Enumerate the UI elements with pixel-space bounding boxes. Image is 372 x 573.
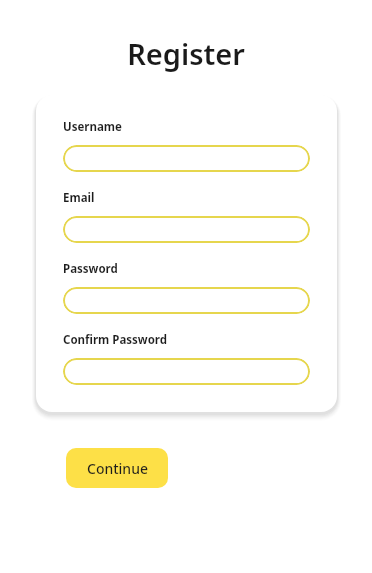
- staticText: Confirm Password: [63, 332, 168, 348]
- button[interactable]: Email: [63, 216, 310, 243]
- button[interactable]: Continue: [66, 448, 168, 488]
- staticText: Username: [63, 119, 122, 135]
- staticText: Continue: [87, 459, 148, 478]
- staticText: Email: [63, 190, 95, 206]
- staticText: Password: [63, 261, 118, 277]
- button[interactable]: Username: [63, 145, 310, 172]
- staticText: Register: [0, 34, 372, 73]
- button[interactable]: Confirm Password: [63, 358, 310, 385]
- button[interactable]: Password: [63, 287, 310, 314]
